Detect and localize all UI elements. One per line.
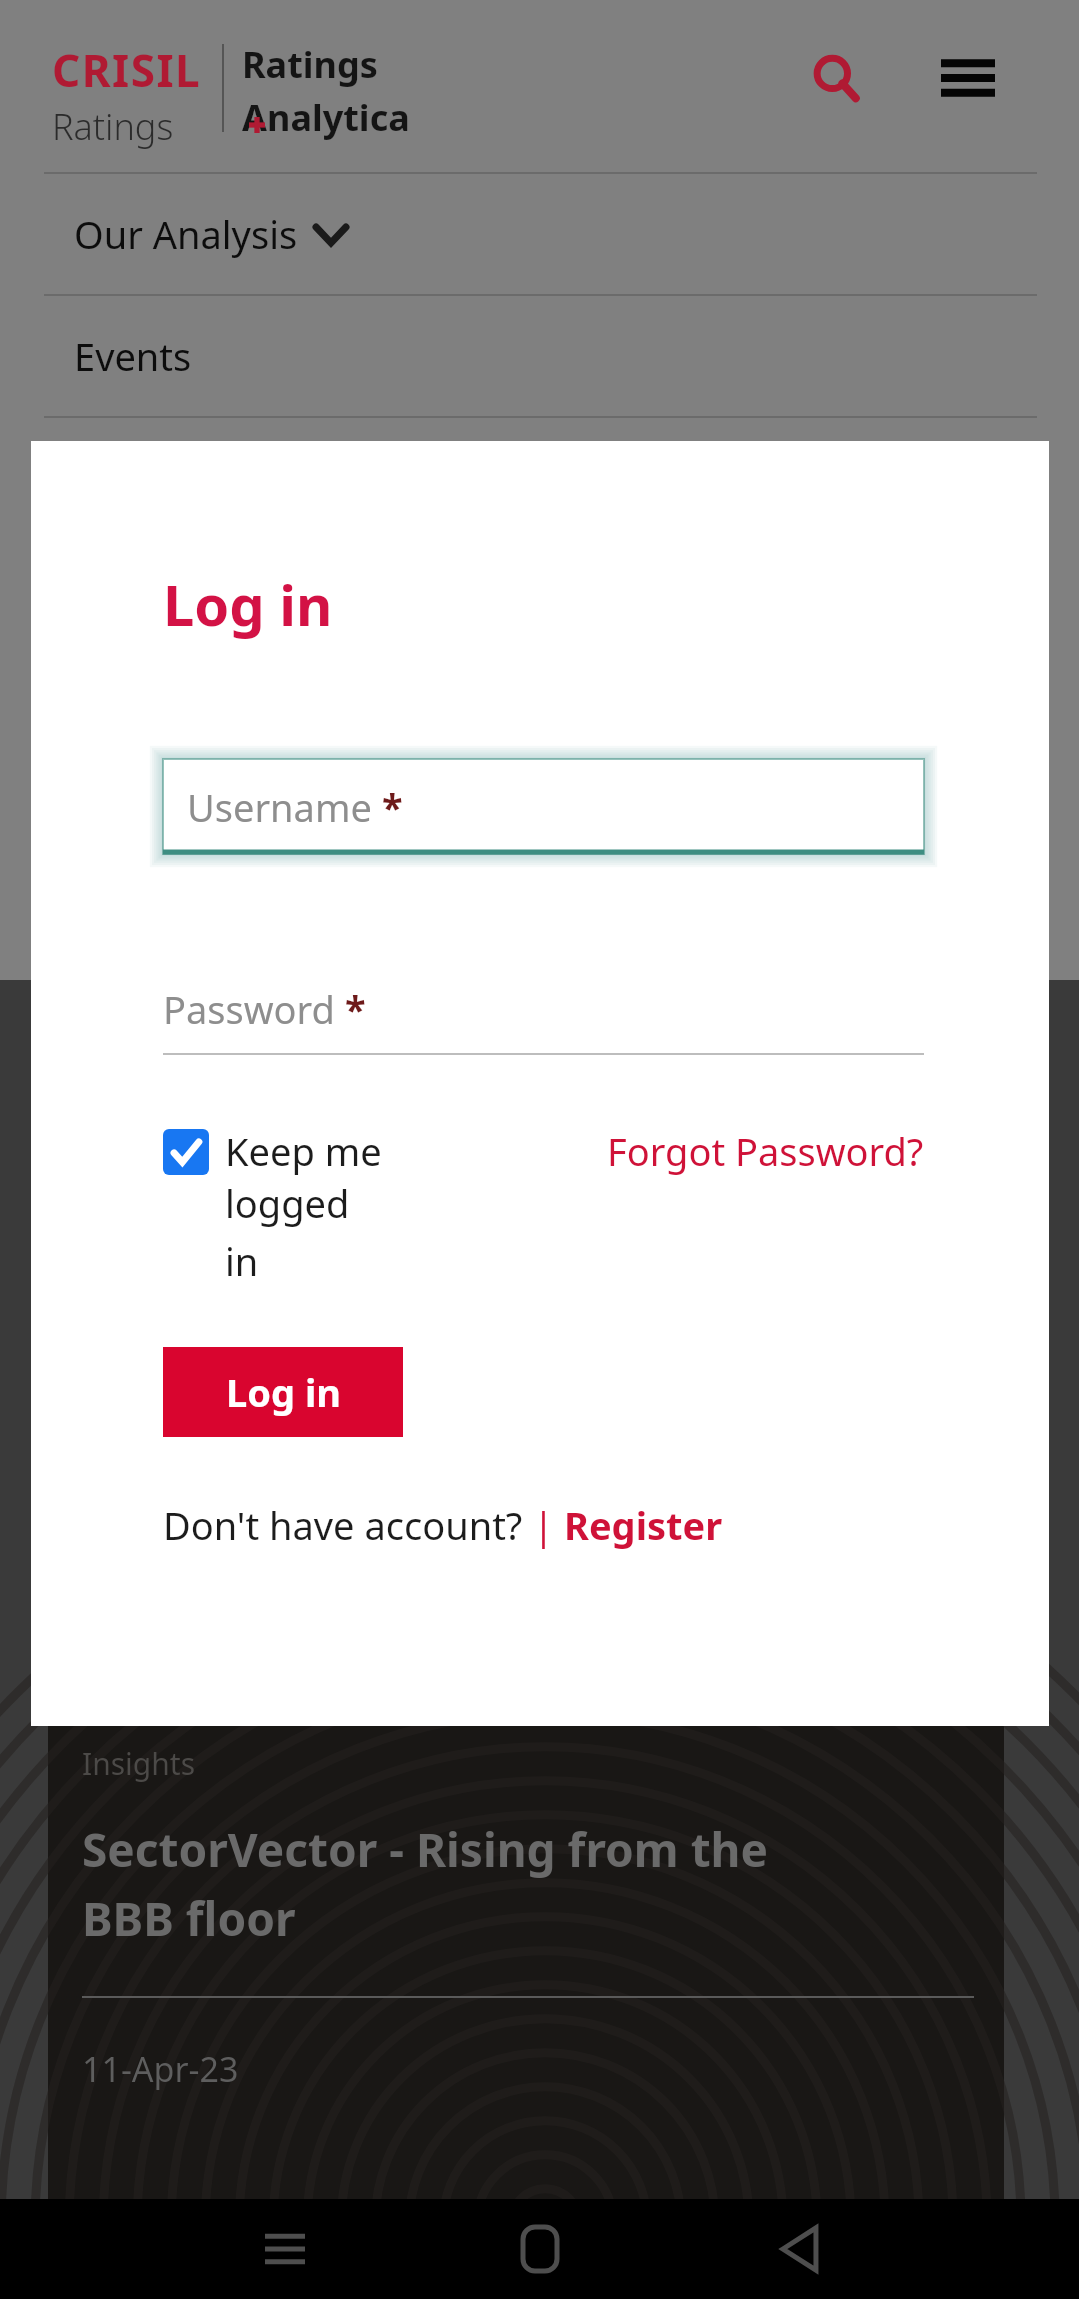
button[interactable]: Our Analysis [0,174,1079,294]
staticText: Ratings [242,40,378,89]
button[interactable]: Recent apps [245,2199,325,2299]
staticText: Register [564,1499,723,1551]
button[interactable]: | [533,1499,723,1551]
staticText: Our Analysis [74,208,298,260]
staticText: in [225,1235,259,1287]
staticText: Ratings [52,102,174,151]
staticText: Insights [82,1743,196,1784]
staticText: * [382,781,403,833]
button[interactable]: Keep me logged [163,1125,493,1287]
staticText: Keep me logged [225,1125,493,1229]
staticText: Password [163,983,345,1035]
staticText: Log in [163,566,333,642]
button[interactable]: Home [500,2199,580,2299]
staticText: CRISIL [52,40,202,100]
staticText: Events [74,330,192,382]
staticText: Username [187,781,382,833]
button[interactable]: Forgot Password? [607,1125,924,1177]
staticText: Log in [226,1366,341,1418]
staticText: * [345,983,366,1035]
button[interactable]: Back [760,2199,840,2299]
staticText: BBB floor [82,1887,296,1950]
button[interactable]: Username [163,759,924,854]
staticText: | [533,1499,564,1551]
staticText: nalytica [267,93,410,142]
button[interactable]: Events [0,296,1079,416]
staticText: Don't have account? [163,1499,533,1551]
staticText: Forgot Password? [607,1125,924,1177]
button[interactable]: Menu [932,42,1004,114]
staticText: SectorVector - Rising from the [82,1818,768,1881]
button[interactable]: Password [163,963,924,1055]
button[interactable]: Log in [163,1347,403,1437]
staticText: 11-Apr-23 [82,2046,239,2092]
staticText: A [242,93,267,142]
button[interactable]: Search [800,42,872,114]
